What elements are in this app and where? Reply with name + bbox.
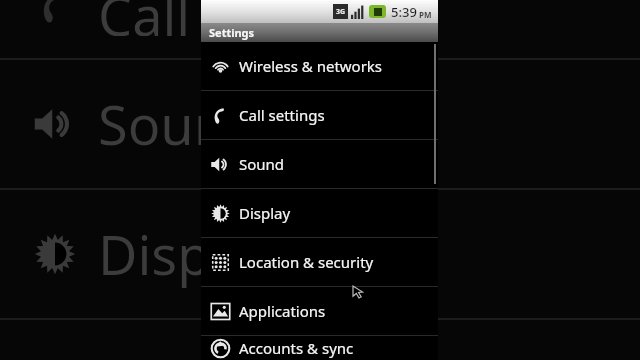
staticText: Soun	[98, 87, 228, 161]
button[interactable]: Applications	[201, 287, 438, 335]
staticText: Call s	[98, 0, 231, 36]
staticText: Settings	[209, 25, 255, 40]
other: Pointer	[353, 286, 365, 298]
staticText: Call settings	[239, 105, 325, 125]
staticText: Accounts & sync	[239, 338, 354, 358]
staticText: Wireless & networks	[239, 56, 383, 76]
staticText: PM	[419, 9, 432, 20]
staticText: Display	[239, 203, 291, 223]
button[interactable]: Wireless & networks	[201, 42, 438, 90]
staticText: Sound	[239, 154, 285, 174]
button[interactable]: Display	[201, 189, 438, 237]
staticText: Location & security	[239, 252, 374, 272]
staticText: 5:39	[391, 3, 417, 21]
button[interactable]: Sound	[201, 140, 438, 188]
button[interactable]: Location & security	[201, 238, 438, 286]
staticText: Applications	[239, 301, 326, 321]
staticText: Displ	[98, 217, 225, 291]
staticText: 3G	[336, 7, 346, 17]
button[interactable]: Call settings	[201, 91, 438, 139]
button[interactable]: Accounts & sync	[201, 336, 438, 360]
